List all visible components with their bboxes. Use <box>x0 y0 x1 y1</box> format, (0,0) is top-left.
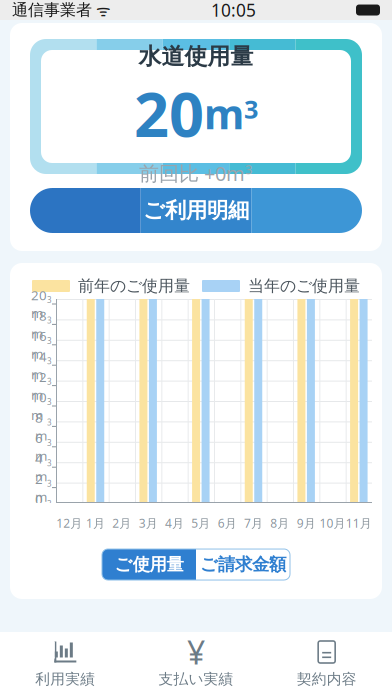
staticText: 7月 <box>244 515 263 531</box>
staticText: 8m <box>35 409 47 444</box>
staticText: 3 <box>245 160 253 178</box>
staticText: 当年のご使用量 <box>248 276 360 296</box>
staticText: 3 <box>47 315 52 326</box>
staticText: 9月 <box>297 515 316 531</box>
staticText: 6m <box>35 429 47 464</box>
staticText: ¥ <box>187 631 205 673</box>
staticText: 2m <box>35 470 47 505</box>
staticText: 16m <box>31 327 47 362</box>
staticText: 3 <box>244 92 258 126</box>
staticText: 3 <box>47 478 52 489</box>
staticText: ご使用量 <box>114 554 183 575</box>
staticText: 6月 <box>218 515 237 531</box>
staticText: 4m <box>35 449 47 485</box>
staticText: 0m <box>35 490 47 526</box>
staticText: 3 <box>47 437 52 448</box>
staticText: 前回比 +0m <box>139 160 245 186</box>
staticText: 3 <box>47 458 52 468</box>
button[interactable]: 支払い実績 <box>131 632 261 696</box>
staticText: 10月 <box>319 515 345 531</box>
button[interactable]: 利用実績 <box>0 632 131 696</box>
staticText: 通信事業者 <box>12 0 92 20</box>
staticText: 3月 <box>139 515 158 531</box>
staticText: 利用実績 <box>35 670 95 688</box>
staticText: 3 <box>47 335 52 346</box>
staticText: 3 <box>47 376 52 387</box>
button[interactable]: ご請求金額 <box>196 549 290 580</box>
staticText: 20 <box>134 72 204 154</box>
staticText: 3 <box>47 356 52 366</box>
staticText: 3 <box>47 499 52 509</box>
staticText: 14m <box>31 347 47 383</box>
staticText: 3 <box>47 295 52 305</box>
staticText: m <box>204 86 244 141</box>
staticText: 水道使用量 <box>138 43 253 70</box>
staticText: 5月 <box>191 515 210 531</box>
staticText: 8月 <box>270 515 289 531</box>
staticText: 12月 <box>56 515 82 531</box>
staticText: ご請求金額 <box>200 554 286 575</box>
staticText: 3 <box>47 417 52 428</box>
staticText: 前年のご使用量 <box>78 276 190 296</box>
staticText: 10m <box>31 388 47 424</box>
button[interactable]: ご使用量 <box>102 549 196 580</box>
staticText: ご利用明細 <box>143 197 249 224</box>
staticText: 1月 <box>86 515 105 531</box>
staticText: 2月 <box>112 515 131 531</box>
staticText: 18m <box>31 307 47 342</box>
staticText: 3 <box>47 397 52 407</box>
staticText: 12m <box>31 368 47 403</box>
staticText: 10:05 <box>211 0 256 21</box>
staticText: 20m <box>31 286 47 322</box>
staticText: 契約内容 <box>297 670 357 688</box>
staticText: 支払い実績 <box>158 670 233 688</box>
staticText: 4月 <box>165 515 184 531</box>
button[interactable]: 契約内容 <box>261 632 392 696</box>
staticText: 11月 <box>346 515 372 531</box>
staticText: ᯤ <box>92 0 111 21</box>
button[interactable]: ご利用明細 <box>30 188 362 233</box>
